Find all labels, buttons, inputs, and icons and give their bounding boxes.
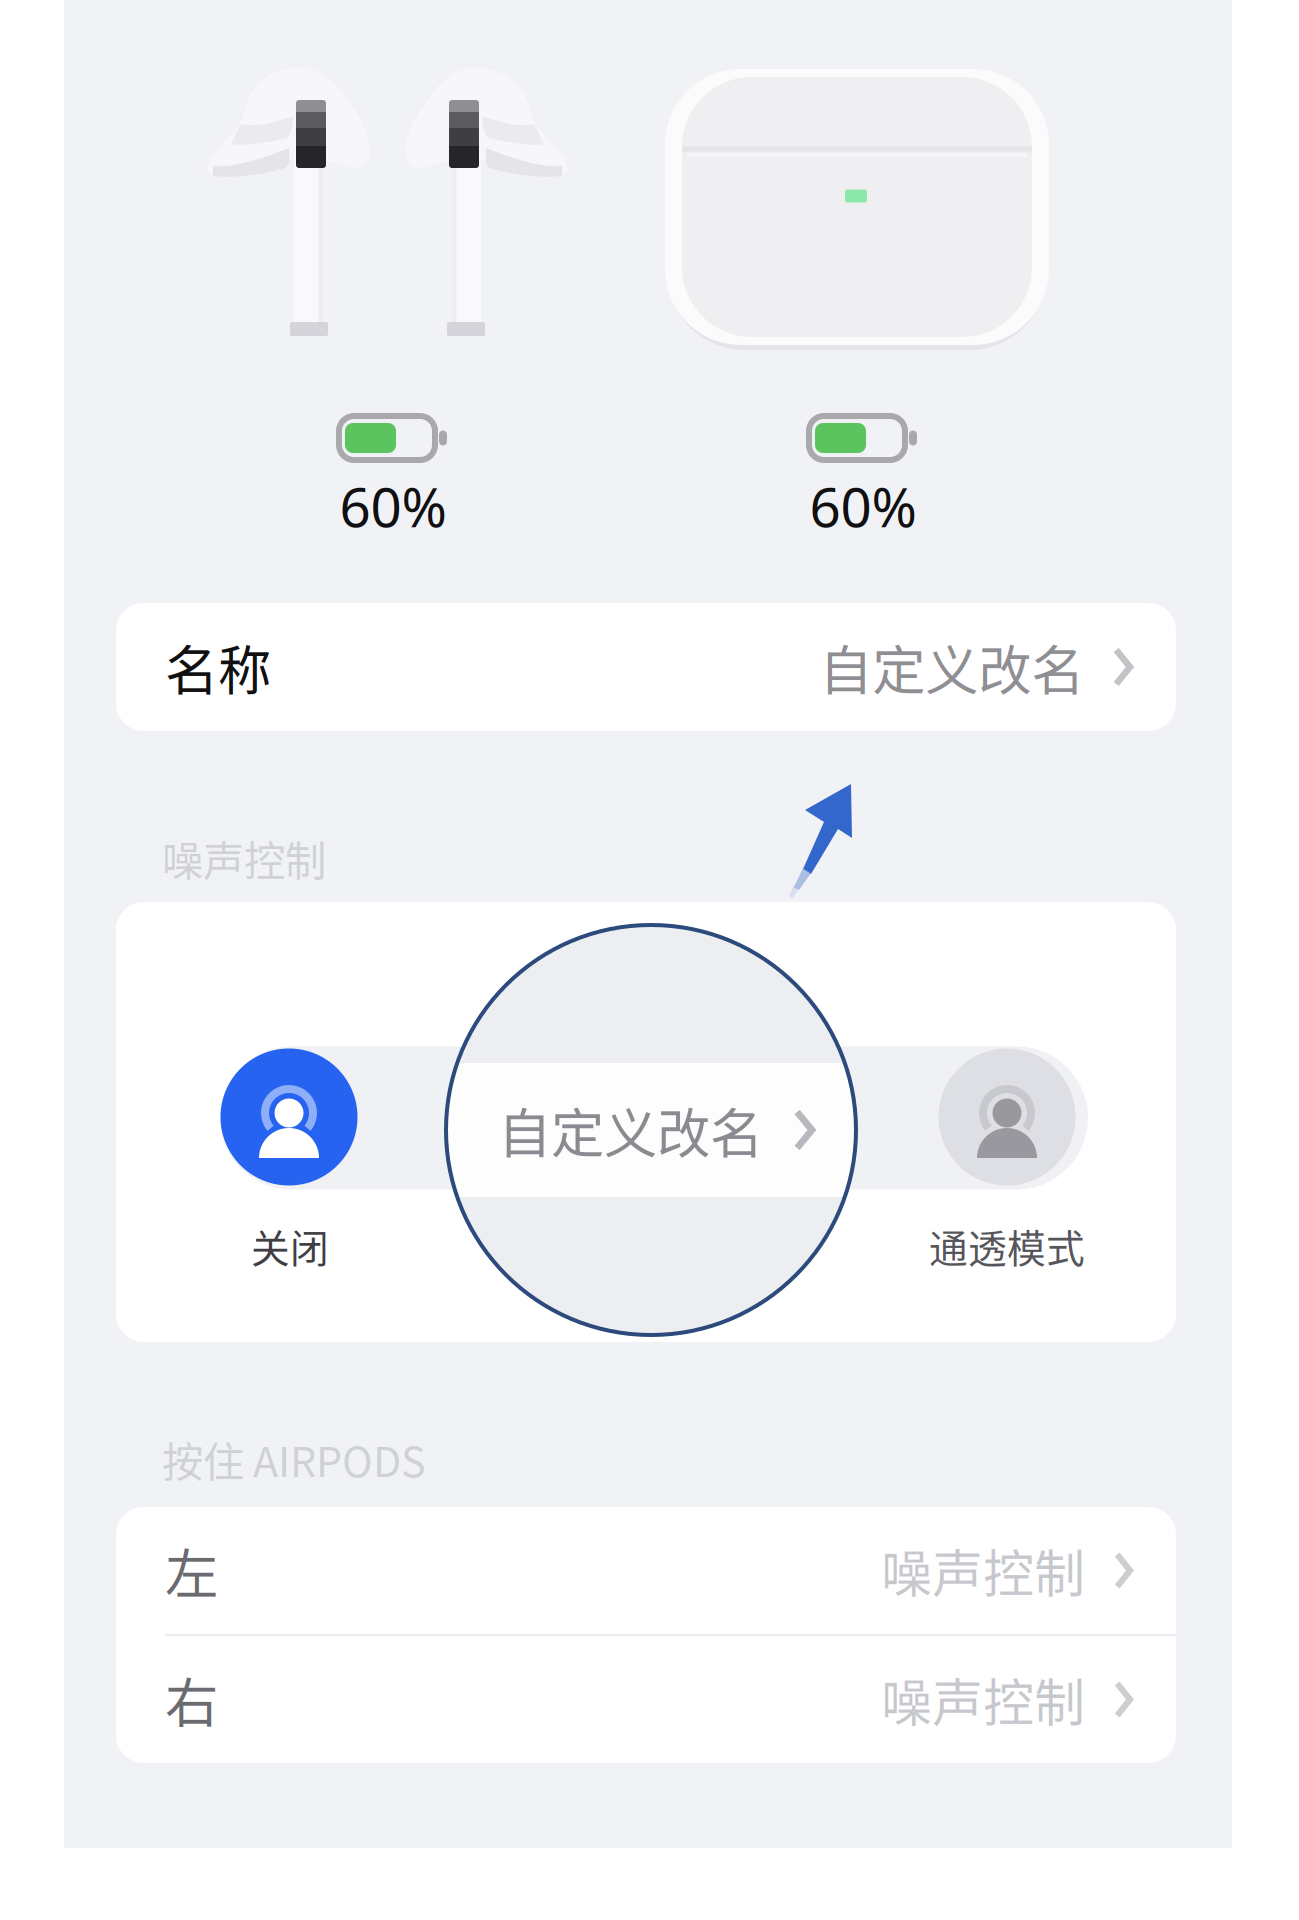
button[interactable]: 左: [116, 1507, 1176, 1634]
staticText: 60%: [339, 470, 446, 542]
staticText: 自定义改名: [498, 1091, 763, 1169]
button[interactable]: Noise control off: [220, 1048, 357, 1185]
staticText: 右: [165, 1661, 218, 1738]
staticText: 通透模式: [929, 1218, 1085, 1274]
staticText: 名称: [165, 628, 271, 706]
staticText: 自定义改名: [819, 628, 1084, 706]
staticText: 噪声控制: [162, 828, 326, 888]
staticText: 噪声控制: [881, 1663, 1085, 1736]
staticText: 60%: [809, 470, 916, 542]
staticText: 按住 AIRPODS: [162, 1429, 426, 1489]
button[interactable]: Transparency mode: [938, 1048, 1075, 1185]
staticText: 左: [165, 1532, 218, 1609]
staticText: 噪声控制: [881, 1534, 1085, 1607]
button[interactable]: 名称: [116, 603, 1176, 731]
staticText: 关闭: [251, 1218, 329, 1274]
button[interactable]: 右: [116, 1636, 1176, 1763]
